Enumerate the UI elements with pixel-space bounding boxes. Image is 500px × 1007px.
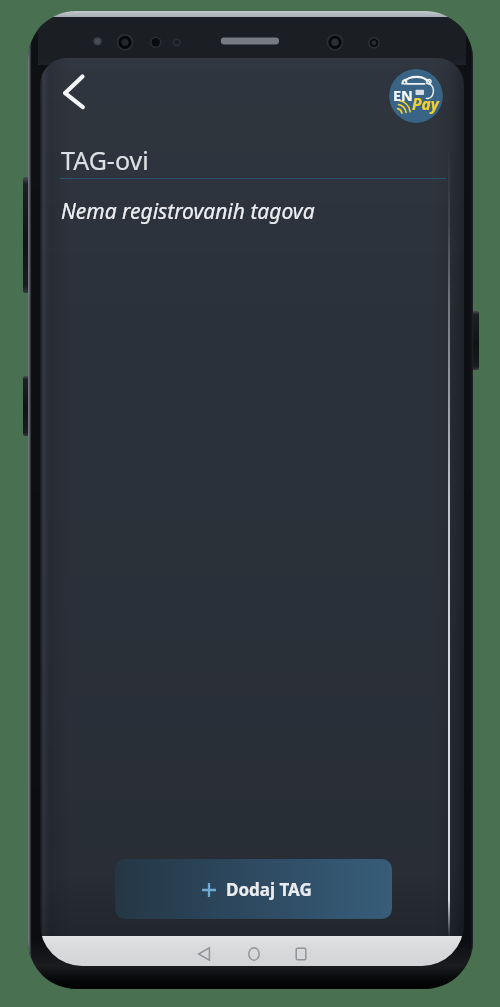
button[interactable]: Recent apps	[277, 936, 325, 966]
button[interactable]: Back	[180, 936, 228, 966]
button[interactable]: ENPay	[389, 69, 443, 123]
staticText: EN	[393, 85, 413, 105]
staticText: Dodaj TAG	[226, 878, 312, 901]
button[interactable]: Dodaj TAG	[115, 859, 392, 919]
button[interactable]: Back	[53, 68, 99, 114]
staticText: Nema registrovanih tagova	[61, 197, 315, 226]
staticText: Pay	[412, 93, 439, 114]
staticText: TAG-ovi	[61, 143, 149, 177]
button[interactable]: Home	[230, 936, 278, 966]
